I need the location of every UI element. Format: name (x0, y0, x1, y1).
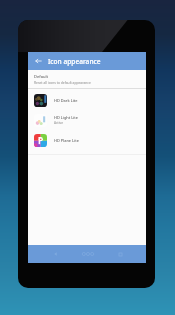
staticText: Icon appearance (48, 57, 101, 66)
button[interactable]: Back (31, 52, 46, 70)
staticText: HD Light Lite (54, 115, 79, 120)
button[interactable]: HD Dark Lite (28, 90, 146, 110)
staticText: HD Plane Lite (54, 138, 79, 143)
button[interactable]: HD Light Lite (28, 110, 146, 130)
button[interactable]: Home (78, 245, 98, 263)
button[interactable]: HD Plane Lite (28, 130, 146, 150)
staticText: HD Dark Lite (54, 98, 78, 103)
staticText: Reset all icons to default appearance (34, 80, 91, 84)
button[interactable]: Default (28, 70, 146, 88)
staticText: Active (54, 121, 63, 125)
staticText: Default (34, 74, 49, 79)
